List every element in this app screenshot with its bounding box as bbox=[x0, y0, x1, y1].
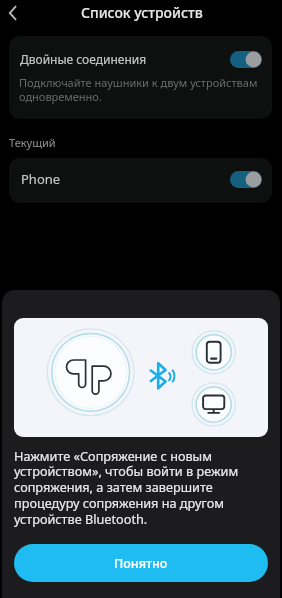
staticText: Текущий bbox=[9, 135, 56, 150]
staticText: Phone bbox=[21, 170, 61, 188]
button[interactable]: Понятно bbox=[14, 544, 268, 582]
staticText: Нажмите «Сопряжение с новым устройством»… bbox=[14, 447, 266, 528]
staticText: Подключайте наушники к двум устройствам … bbox=[19, 75, 269, 105]
staticText: Понятно bbox=[114, 555, 168, 572]
button[interactable]: Toggle bbox=[230, 171, 262, 188]
staticText: Двойные соединения bbox=[20, 51, 147, 67]
staticText: Список устройств bbox=[81, 3, 203, 22]
button[interactable]: Toggle bbox=[230, 51, 262, 68]
button[interactable]: Двойные соединения bbox=[9, 36, 272, 80]
button[interactable]: Back bbox=[0, 0, 26, 26]
button[interactable]: Phone bbox=[9, 158, 272, 203]
